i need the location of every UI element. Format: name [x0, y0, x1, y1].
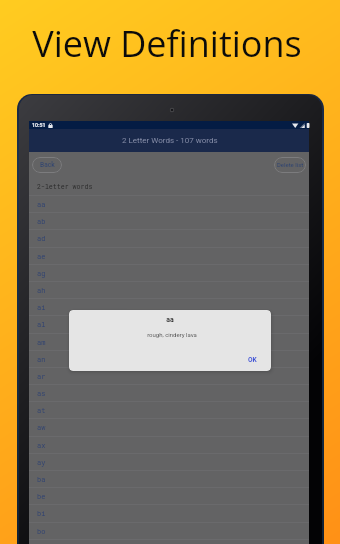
- staticText: 2 Letter Words - 107 words: [122, 136, 218, 145]
- staticText: ar: [37, 372, 46, 381]
- staticText: ai: [37, 303, 46, 312]
- button[interactable]: Delete list: [274, 157, 306, 173]
- button[interactable]: an: [29, 350, 309, 367]
- staticText: ah: [37, 286, 46, 295]
- staticText: am: [37, 338, 46, 347]
- staticText: rough, cindery lava: [71, 331, 271, 338]
- staticText: Delete list: [277, 162, 304, 169]
- staticText: at: [37, 406, 46, 415]
- staticText: ba: [37, 475, 46, 484]
- button[interactable]: ar: [29, 367, 309, 384]
- staticText: as: [37, 389, 46, 398]
- staticText: ag: [37, 269, 46, 278]
- staticText: OK: [248, 356, 257, 364]
- staticText: ad: [37, 234, 46, 243]
- staticText: aa: [69, 316, 271, 324]
- button[interactable]: al: [29, 315, 309, 332]
- staticText: ab: [37, 217, 46, 226]
- button[interactable]: ai: [29, 298, 309, 315]
- button[interactable]: Back: [32, 157, 62, 173]
- staticText: View Definitions: [0, 19, 337, 68]
- staticText: ay: [37, 458, 46, 467]
- staticText: ax: [37, 441, 46, 450]
- staticText: an: [37, 355, 46, 364]
- staticText: aa: [37, 200, 46, 209]
- staticText: bi: [37, 509, 46, 518]
- button[interactable]: am: [29, 333, 309, 350]
- button[interactable]: OK: [239, 350, 266, 370]
- staticText: aw: [37, 423, 46, 432]
- staticText: 10:51: [32, 122, 46, 128]
- staticText: Back: [40, 161, 55, 169]
- staticText: bo: [37, 527, 46, 536]
- staticText: al: [37, 320, 46, 329]
- staticText: ae: [37, 252, 46, 261]
- staticText: 2-letter words: [37, 182, 93, 191]
- staticText: be: [37, 492, 46, 501]
